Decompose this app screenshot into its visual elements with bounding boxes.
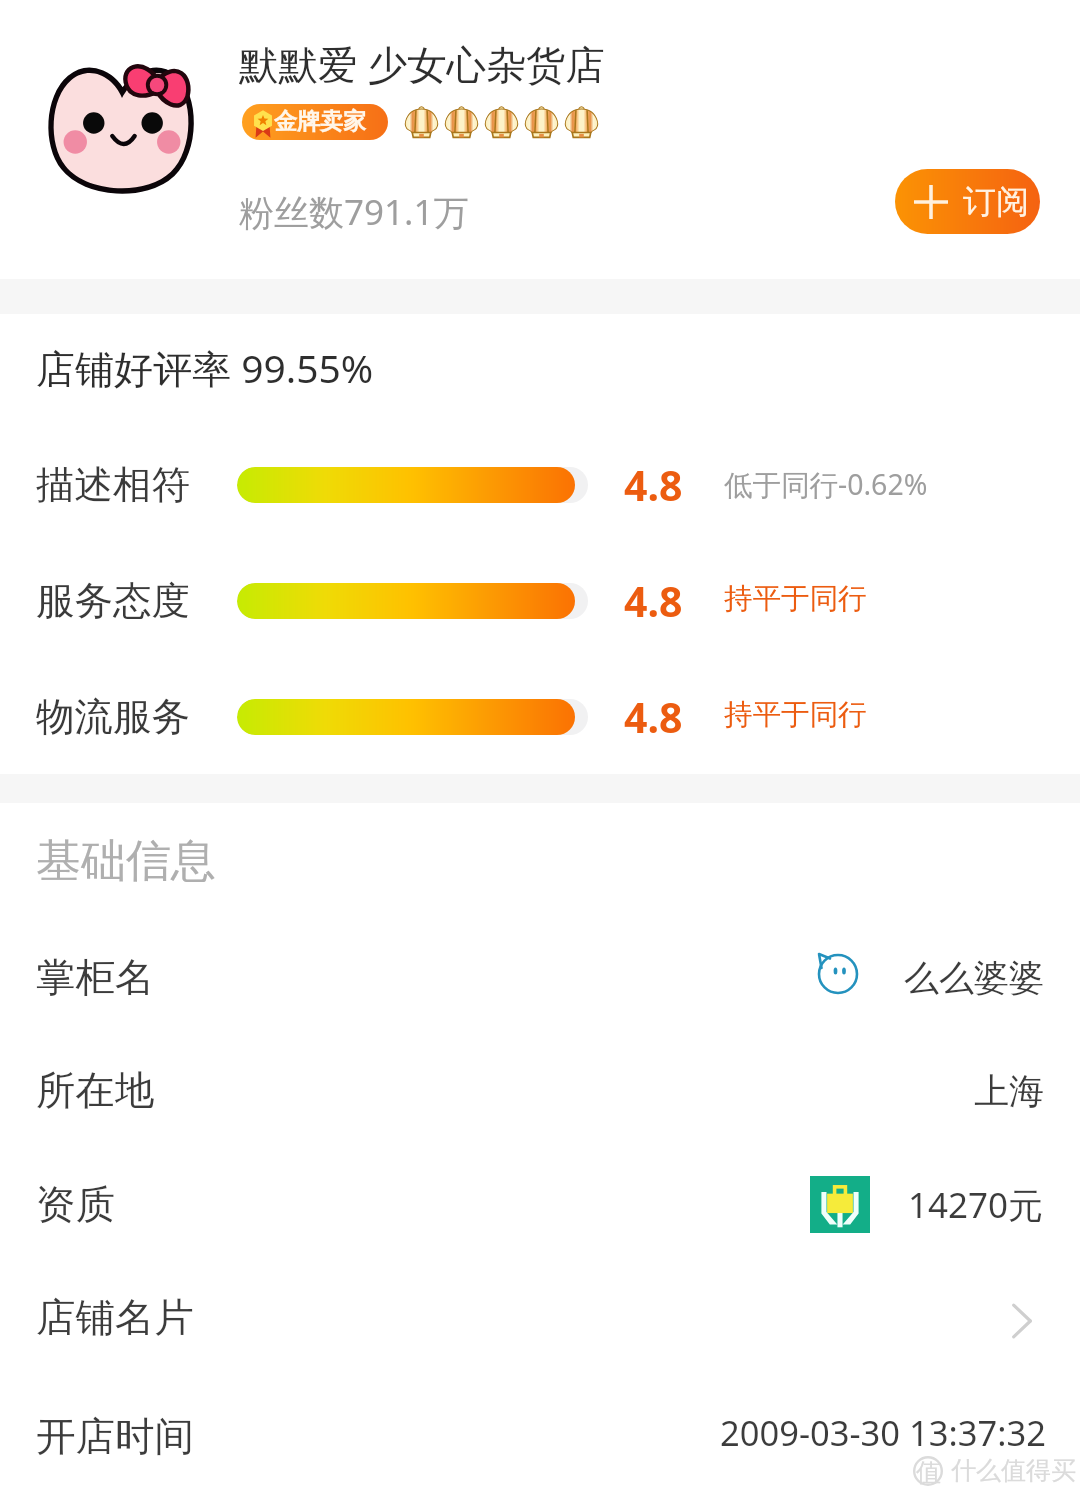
staticText: 么么婆婆 xyxy=(904,956,1044,1000)
button[interactable]: 资质 xyxy=(0,1148,1080,1261)
button[interactable]: 掌柜名 xyxy=(0,921,1080,1034)
other: 查看店铺名片 xyxy=(1011,1303,1033,1339)
staticText: 粉丝数791.1万 xyxy=(239,188,469,236)
staticText: 基础信息 xyxy=(36,833,216,890)
staticText: 值 xyxy=(916,1457,941,1488)
staticText: 持平于同行 xyxy=(724,581,867,617)
button[interactable]: 开店时间 xyxy=(0,1380,1080,1493)
staticText: 2009-03-30 13:37:32 xyxy=(720,1409,1046,1456)
staticText: 物流服务 xyxy=(36,693,190,742)
staticText: 掌柜名 xyxy=(36,953,155,1003)
staticText: 描述相符 xyxy=(36,461,190,510)
button[interactable]: 金牌卖家 xyxy=(242,104,388,140)
button[interactable]: 所在地 xyxy=(0,1034,1080,1147)
button[interactable]: 店铺名片 xyxy=(0,1261,1080,1374)
staticText: 订阅 xyxy=(963,181,1029,223)
staticText: 4.8 xyxy=(624,457,683,513)
staticText: 上海 xyxy=(974,1069,1044,1113)
staticText: 4.8 xyxy=(624,573,683,629)
staticText: 14270元 xyxy=(908,1181,1044,1229)
staticText: 默默爱 少女心杂货店 xyxy=(239,37,605,91)
staticText: 开店时间 xyxy=(36,1412,194,1462)
button[interactable] xyxy=(0,0,880,278)
staticText: 资质 xyxy=(36,1180,115,1230)
staticText: 持平于同行 xyxy=(724,697,867,733)
staticText: 低于同行-0.62% xyxy=(724,465,928,504)
staticText: 什么值得买 xyxy=(951,1455,1076,1486)
staticText: 服务态度 xyxy=(36,577,190,626)
button[interactable]: 订阅 xyxy=(895,169,1040,234)
other: 店铺头像 xyxy=(48,56,196,198)
staticText: 4.8 xyxy=(624,689,683,745)
staticText: 店铺好评率 99.55% xyxy=(36,341,374,394)
staticText: 金牌卖家 xyxy=(274,107,366,136)
staticText: 所在地 xyxy=(36,1066,155,1116)
staticText: 店铺名片 xyxy=(36,1293,194,1343)
